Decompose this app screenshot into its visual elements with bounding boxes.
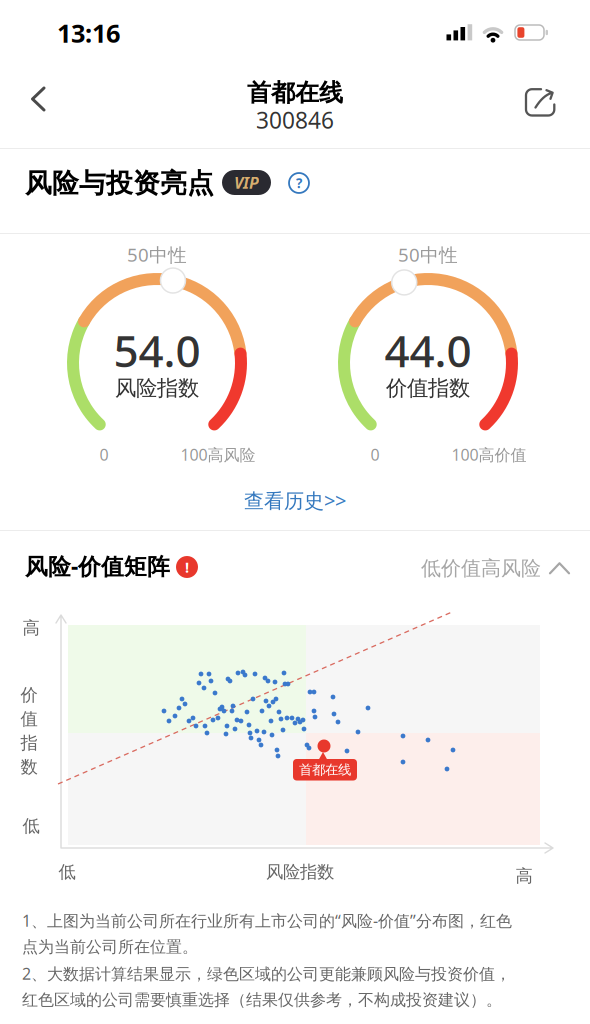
staticText: 13:16 [57, 16, 120, 50]
button[interactable]: 收起 [421, 556, 570, 581]
button[interactable]: 提示 [176, 556, 198, 578]
staticText: 50中性 [398, 242, 458, 267]
button[interactable]: VIP [222, 170, 271, 195]
staticText: ? [296, 174, 302, 192]
staticText: 价值指数 [386, 375, 470, 401]
staticText: 风险与投资亮点 [25, 167, 214, 200]
staticText: 指 [20, 732, 37, 754]
button[interactable]: 查看历史>> [0, 487, 590, 514]
staticText: 低 [22, 815, 39, 837]
staticText: 红色区域的公司需要慎重选择（结果仅供参考，不构成投资建议）。 [22, 990, 502, 1010]
staticText: 数 [20, 756, 37, 778]
staticText: 低 [58, 861, 75, 883]
staticText: 0 [99, 444, 108, 465]
staticText: 1、上图为当前公司所在行业所有上市公司的“风险-价值”分布图，红色 [22, 910, 512, 931]
staticText: 首都在线 [247, 78, 343, 107]
staticText: 值 [20, 708, 37, 730]
button[interactable]: Back [30, 86, 47, 112]
staticText: VIP [234, 172, 259, 193]
staticText: 风险指数 [115, 375, 199, 401]
staticText: 54.0 [113, 321, 200, 379]
button[interactable]: 帮助 [288, 172, 310, 194]
staticText: ! [185, 557, 189, 577]
staticText: 风险指数 [266, 861, 334, 883]
staticText: 价 [20, 684, 37, 706]
staticText: 查看历史>> [244, 487, 346, 514]
staticText: 100高价值 [451, 444, 526, 465]
button[interactable]: 首都在线 [293, 759, 357, 780]
button[interactable]: Share [526, 88, 556, 117]
staticText: 点为当前公司所在位置。 [22, 937, 198, 957]
staticText: 50中性 [127, 242, 187, 267]
staticText: 首都在线 [299, 762, 351, 778]
staticText: 100高风险 [180, 444, 255, 465]
staticText: 2、大数据计算结果显示，绿色区域的公司更能兼顾风险与投资价值， [22, 963, 511, 984]
staticText: 高 [515, 865, 532, 887]
staticText: 300846 [256, 105, 334, 135]
staticText: 0 [370, 444, 379, 465]
staticText: 44.0 [384, 321, 471, 379]
staticText: 高 [22, 617, 39, 639]
staticText: 低价值高风险 [421, 556, 541, 581]
staticText: 风险-价值矩阵 [25, 551, 170, 581]
